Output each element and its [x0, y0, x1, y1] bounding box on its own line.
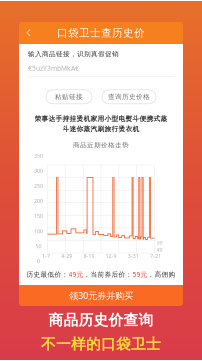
staticText: 59 — [156, 239, 162, 246]
staticText: 150 — [34, 212, 43, 220]
staticText: 1-7 — [42, 252, 50, 260]
staticText: 查询历史价格 — [108, 93, 150, 101]
staticText: 历史最低价： — [26, 270, 68, 279]
button[interactable]: 领30元券并购买 — [19, 285, 183, 306]
staticText: 领30元券并购买 — [69, 289, 133, 302]
staticText: 7-21 — [150, 252, 161, 260]
staticText: €5uzY3mbMkA€ — [28, 64, 79, 73]
staticText: 350 — [34, 152, 43, 159]
staticText: 49 — [156, 246, 162, 253]
staticText: 输入商品链接，识别真假促销 — [28, 50, 119, 58]
staticText: 斗迷你蒸汽刷旅行烫衣机 — [62, 125, 139, 133]
staticText: 300 — [34, 167, 43, 174]
button[interactable]: Back — [19, 24, 31, 42]
staticText: 50 — [35, 243, 41, 250]
staticText: 0 — [37, 258, 40, 265]
staticText: ，高佣购 — [147, 270, 175, 279]
staticText: 商品近期价格走势 — [73, 141, 129, 149]
staticText: 口袋卫士查历史价 — [57, 26, 145, 39]
button[interactable]: 查询历史价格 — [102, 90, 156, 104]
staticText: 荣事达手持挂烫机家用小型电熨斗便携式蒸 — [34, 115, 167, 123]
staticText: 250 — [34, 182, 43, 189]
staticText: 8-19 — [83, 252, 94, 260]
staticText: 3-31 — [128, 252, 139, 260]
staticText: 商品历史价查询 — [48, 311, 153, 329]
staticText: 12-9 — [106, 252, 117, 260]
staticText: 200 — [34, 197, 43, 204]
staticText: 59元 — [132, 270, 147, 279]
staticText: 100 — [34, 228, 43, 235]
button[interactable]: 粘贴链接 — [46, 90, 92, 104]
staticText: 粘贴链接 — [55, 93, 83, 101]
staticText: ，当前券后价： — [83, 270, 132, 279]
staticText: 4-29 — [61, 252, 72, 260]
staticText: 49元 — [68, 270, 83, 279]
staticText: 不一样的口袋卫士 — [41, 335, 161, 353]
